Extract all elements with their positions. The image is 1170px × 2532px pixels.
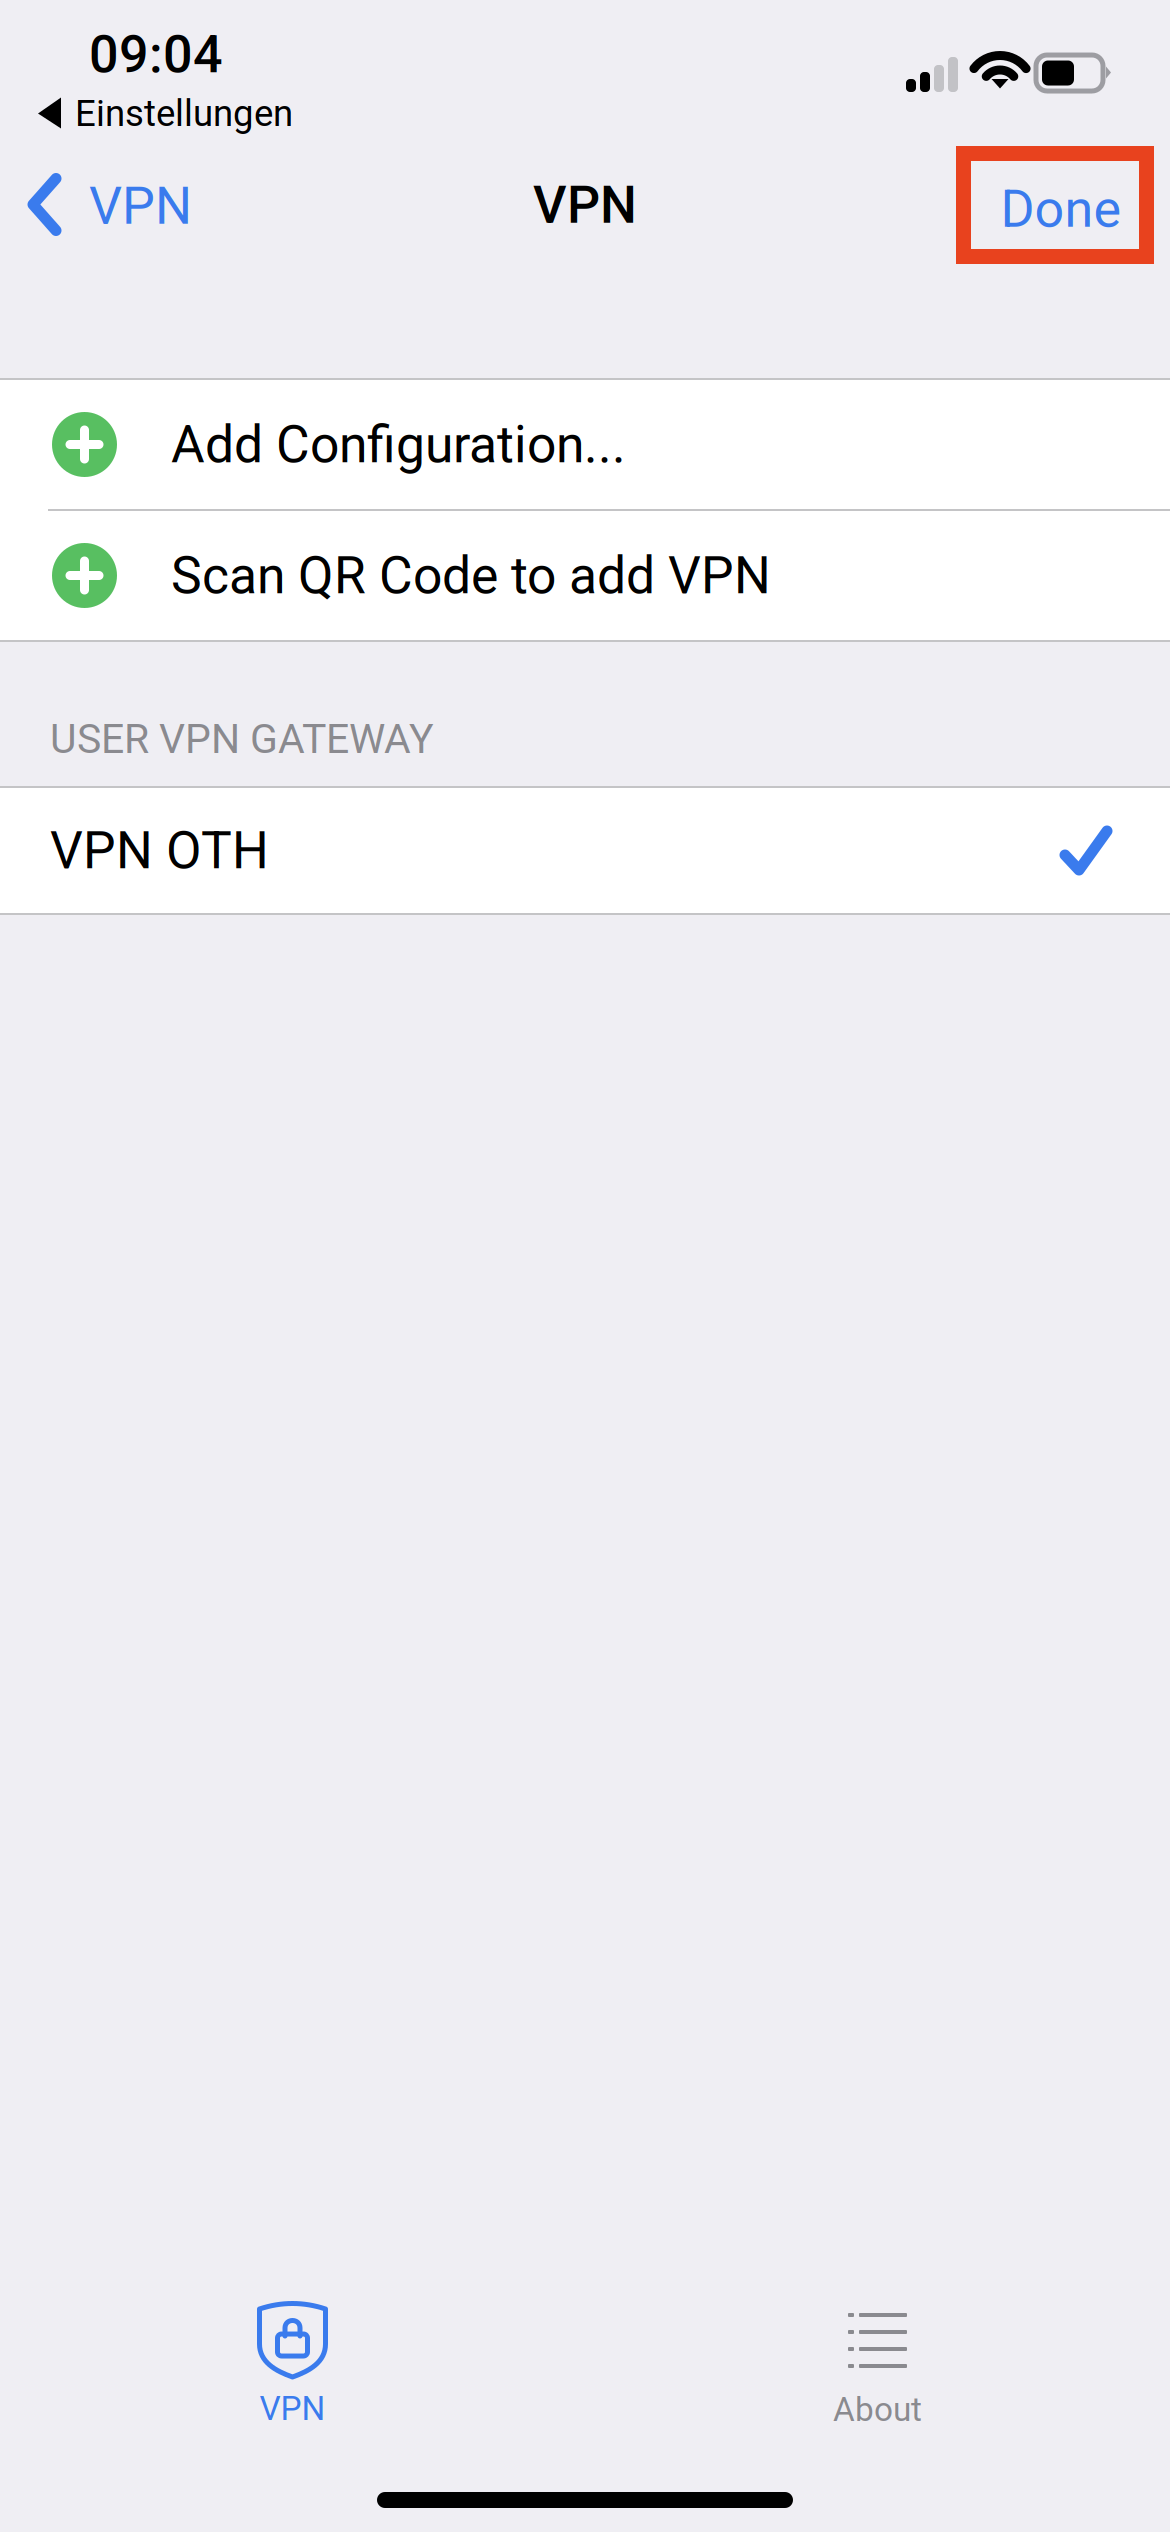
button[interactable]: Scan QR Code to add VPN <box>0 511 1170 640</box>
staticText: 09:04 <box>89 24 223 85</box>
staticText: Scan QR Code to add VPN <box>171 545 771 606</box>
button[interactable]: VPN OTH <box>0 788 1170 913</box>
staticText: USER VPN GATEWAY <box>50 715 434 763</box>
staticText: VPN <box>259 2389 325 2428</box>
staticText: Add Configuration... <box>171 414 626 475</box>
button[interactable]: VPN <box>0 2280 585 2440</box>
staticText: VPN <box>533 174 637 235</box>
button[interactable]: VPN <box>0 156 192 253</box>
staticText: VPN OTH <box>50 820 269 881</box>
button[interactable]: Done <box>956 146 1170 264</box>
staticText: Einstellungen <box>75 92 293 135</box>
staticText: About <box>833 2390 922 2429</box>
staticText: VPN <box>89 175 192 236</box>
staticText: Done <box>1000 178 1121 239</box>
button[interactable]: About <box>585 2280 1170 2440</box>
button[interactable]: Add Configuration... <box>0 380 1170 509</box>
